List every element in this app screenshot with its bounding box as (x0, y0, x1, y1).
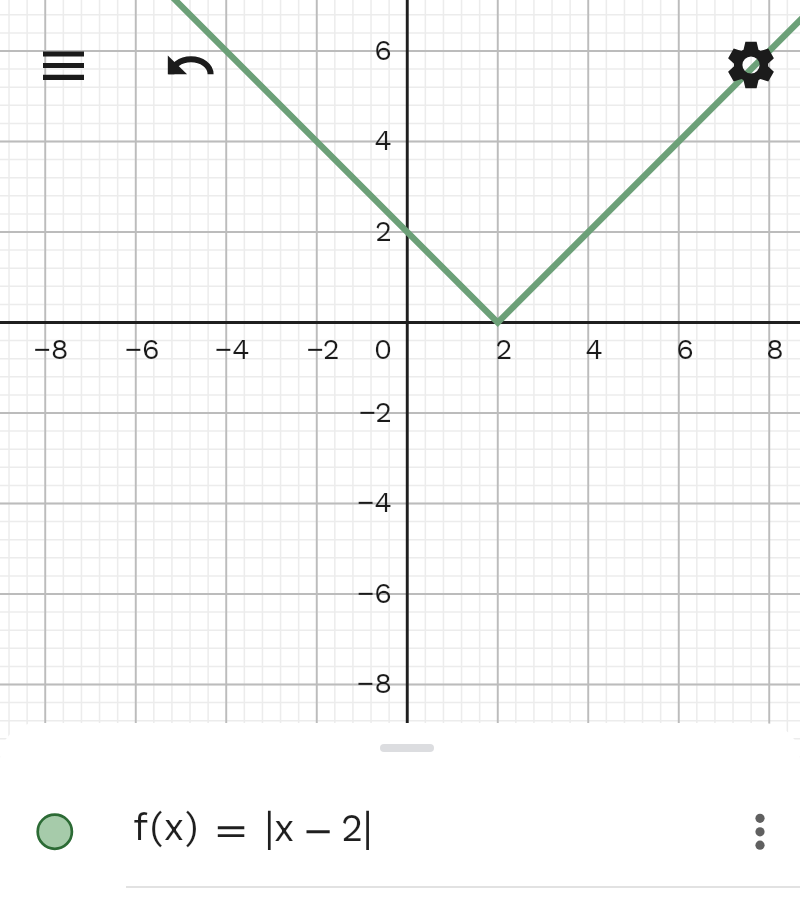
staticText: −8 (312, 666, 392, 700)
button[interactable]: Menu (30, 38, 96, 92)
button[interactable]: More options (730, 798, 790, 866)
staticText: 8 (735, 332, 800, 366)
staticText: −4 (192, 332, 272, 366)
staticText: 2 (312, 214, 392, 248)
button[interactable]: Undo (160, 45, 220, 81)
staticText: 0 (343, 332, 423, 366)
staticText: −6 (102, 332, 182, 366)
button[interactable]: f(x) (0, 778, 800, 886)
staticText: −2 (312, 395, 392, 429)
staticText: −8 (11, 332, 91, 366)
staticText: f(x) (133, 805, 200, 850)
staticText: 6 (645, 332, 725, 366)
staticText: 4 (554, 332, 634, 366)
staticText: 6 (312, 33, 392, 67)
staticText: −6 (312, 576, 392, 610)
staticText: −4 (312, 485, 392, 519)
staticText: 4 (312, 123, 392, 157)
staticText: x (274, 806, 295, 851)
staticText: −2 (283, 332, 363, 366)
button[interactable]: Settings (726, 40, 776, 90)
staticText: 2 (464, 332, 544, 366)
staticText: 2 (341, 806, 364, 851)
